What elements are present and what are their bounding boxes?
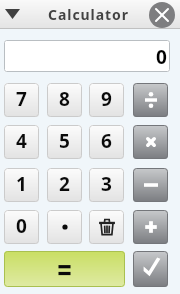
button[interactable]: 3	[89, 168, 124, 202]
button[interactable]: Subtract	[133, 168, 168, 202]
button[interactable]: 5	[47, 125, 82, 159]
button[interactable]	[4, 251, 125, 287]
button[interactable]: Confirm	[133, 251, 168, 287]
button[interactable]: Close	[149, 2, 175, 28]
button[interactable]: 8	[47, 83, 82, 117]
staticText: 6	[101, 128, 112, 154]
button[interactable]: 1	[4, 168, 39, 202]
staticText: 1	[16, 171, 27, 197]
button[interactable]: 2	[47, 168, 82, 202]
button[interactable]: 7	[4, 83, 39, 117]
staticText: 0	[156, 44, 167, 70]
button[interactable]: 9	[89, 83, 124, 117]
staticText: 7	[16, 86, 27, 112]
staticText: 4	[16, 128, 27, 154]
button[interactable]: 0	[4, 210, 39, 244]
button[interactable]: 4	[4, 125, 39, 159]
button[interactable]: 6	[89, 125, 124, 159]
staticText: 3	[101, 171, 112, 197]
button[interactable]: Multiply	[133, 125, 168, 159]
staticText: 9	[101, 86, 112, 112]
button[interactable]: Collapse	[0, 1, 25, 27]
button[interactable]: Decimal point	[47, 210, 82, 244]
button[interactable]: Divide	[133, 83, 168, 117]
staticText: 5	[59, 128, 70, 154]
staticText: Calculator	[48, 5, 130, 24]
button[interactable]: Delete	[89, 210, 124, 244]
staticText: 0	[16, 213, 27, 239]
staticText: 2	[59, 171, 70, 197]
button[interactable]: Add	[133, 210, 168, 244]
staticText: 8	[59, 86, 70, 112]
